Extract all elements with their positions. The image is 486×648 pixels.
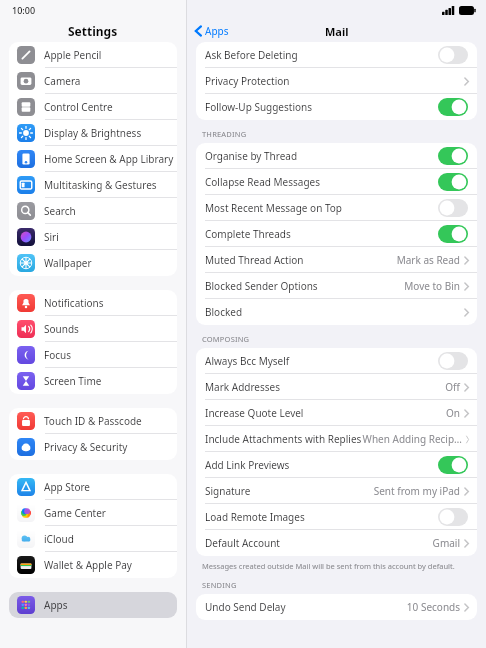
staticText: Sounds: [44, 322, 79, 336]
staticText: 10 Seconds: [406, 600, 460, 614]
button[interactable]: Ask Before Deleting: [196, 42, 477, 68]
staticText: Ask Before Deleting: [205, 48, 438, 62]
button[interactable]: Blocked Sender Options: [196, 273, 477, 299]
staticText: Undo Send Delay: [205, 600, 286, 614]
staticText: Collapse Read Messages: [205, 175, 438, 189]
button[interactable]: Default Account: [196, 530, 477, 556]
button[interactable]: Signature: [196, 478, 477, 504]
button[interactable]: Apps: [193, 24, 231, 38]
button[interactable]: Control Centre: [9, 94, 177, 120]
button[interactable]: Touch ID & Passcode: [9, 408, 177, 434]
staticText: Add Link Previews: [205, 458, 438, 472]
staticText: COMPOSING: [202, 334, 250, 344]
staticText: Apple Pencil: [44, 48, 102, 62]
button[interactable]: Notifications: [9, 290, 177, 316]
staticText: Siri: [44, 230, 59, 244]
staticText: Wallet & Apple Pay: [44, 558, 132, 572]
button[interactable]: Screen Time: [9, 368, 177, 394]
button[interactable]: Increase Quote Level: [196, 400, 477, 426]
staticText: Most Recent Message on Top: [205, 201, 438, 215]
button[interactable]: Mark Addresses: [196, 374, 477, 400]
staticText: Search: [44, 204, 76, 218]
staticText: Multitasking & Gestures: [44, 178, 157, 192]
staticText: Home Screen & App Library: [44, 152, 174, 166]
button[interactable]: Wallpaper: [9, 250, 177, 276]
staticText: Sent from my iPad: [373, 484, 460, 498]
staticText: Privacy & Security: [44, 440, 128, 454]
button[interactable]: Organise by Thread: [196, 143, 477, 169]
button[interactable]: Most Recent Message on Top: [196, 195, 477, 221]
staticText: Notifications: [44, 296, 104, 310]
staticText: 10:00: [12, 4, 36, 16]
staticText: Camera: [44, 74, 81, 88]
staticText: Mark Addresses: [205, 380, 281, 394]
button[interactable]: Always Bcc Myself: [196, 348, 477, 374]
staticText: SENDING: [202, 580, 237, 590]
button[interactable]: Camera: [9, 68, 177, 94]
button[interactable]: Blocked: [196, 299, 477, 325]
button[interactable]: Load Remote Images: [196, 504, 477, 530]
staticText: Complete Threads: [205, 227, 438, 241]
button[interactable]: Search: [9, 198, 177, 224]
staticText: Gmail: [432, 536, 460, 550]
staticText: Mark as Read: [396, 253, 460, 267]
staticText: Organise by Thread: [205, 149, 438, 163]
button[interactable]: Display & Brightness: [9, 120, 177, 146]
button[interactable]: Apps: [9, 592, 177, 618]
button[interactable]: Collapse Read Messages: [196, 169, 477, 195]
staticText: App Store: [44, 480, 91, 494]
staticText: Off: [445, 380, 460, 394]
button[interactable]: Include Attachments with Replies: [196, 426, 477, 452]
staticText: iCloud: [44, 532, 74, 546]
staticText: Focus: [44, 348, 72, 362]
staticText: Touch ID & Passcode: [44, 414, 142, 428]
button[interactable]: Wallet & Apple Pay: [9, 552, 177, 578]
button[interactable]: Add Link Previews: [196, 452, 477, 478]
button[interactable]: Follow-Up Suggestions: [196, 94, 477, 120]
staticText: Blocked: [205, 305, 243, 319]
button[interactable]: Multitasking & Gestures: [9, 172, 177, 198]
button[interactable]: Home Screen & App Library: [9, 146, 177, 172]
button[interactable]: Focus: [9, 342, 177, 368]
staticText: Load Remote Images: [205, 510, 438, 524]
staticText: On: [446, 406, 460, 420]
staticText: Apps: [205, 24, 229, 38]
staticText: Game Center: [44, 506, 106, 520]
staticText: Control Centre: [44, 100, 113, 114]
staticText: Default Account: [205, 536, 280, 550]
staticText: Increase Quote Level: [205, 406, 304, 420]
button[interactable]: Privacy Protection: [196, 68, 477, 94]
button[interactable]: Privacy & Security: [9, 434, 177, 460]
button[interactable]: Game Center: [9, 500, 177, 526]
staticText: Apps: [44, 598, 68, 612]
staticText: Wallpaper: [44, 256, 92, 270]
button[interactable]: Muted Thread Action: [196, 247, 477, 273]
staticText: Move to Bin: [404, 279, 460, 293]
button[interactable]: Complete Threads: [196, 221, 477, 247]
button[interactable]: Siri: [9, 224, 177, 250]
button[interactable]: Undo Send Delay: [196, 594, 477, 620]
button[interactable]: App Store: [9, 474, 177, 500]
staticText: Blocked Sender Options: [205, 279, 318, 293]
staticText: Mail: [325, 24, 349, 39]
staticText: Messages created outside Mail will be se…: [202, 561, 455, 571]
staticText: Include Attachments with Replies: [205, 432, 362, 446]
staticText: Follow-Up Suggestions: [205, 100, 438, 114]
button[interactable]: Sounds: [9, 316, 177, 342]
staticText: Always Bcc Myself: [205, 354, 438, 368]
staticText: When Adding Recip…: [362, 432, 462, 446]
staticText: THREADING: [202, 129, 247, 139]
staticText: Signature: [205, 484, 251, 498]
staticText: Display & Brightness: [44, 126, 142, 140]
button[interactable]: iCloud: [9, 526, 177, 552]
staticText: Screen Time: [44, 374, 102, 388]
staticText: Settings: [68, 23, 118, 39]
button[interactable]: Apple Pencil: [9, 42, 177, 68]
staticText: Muted Thread Action: [205, 253, 304, 267]
staticText: Privacy Protection: [205, 74, 290, 88]
